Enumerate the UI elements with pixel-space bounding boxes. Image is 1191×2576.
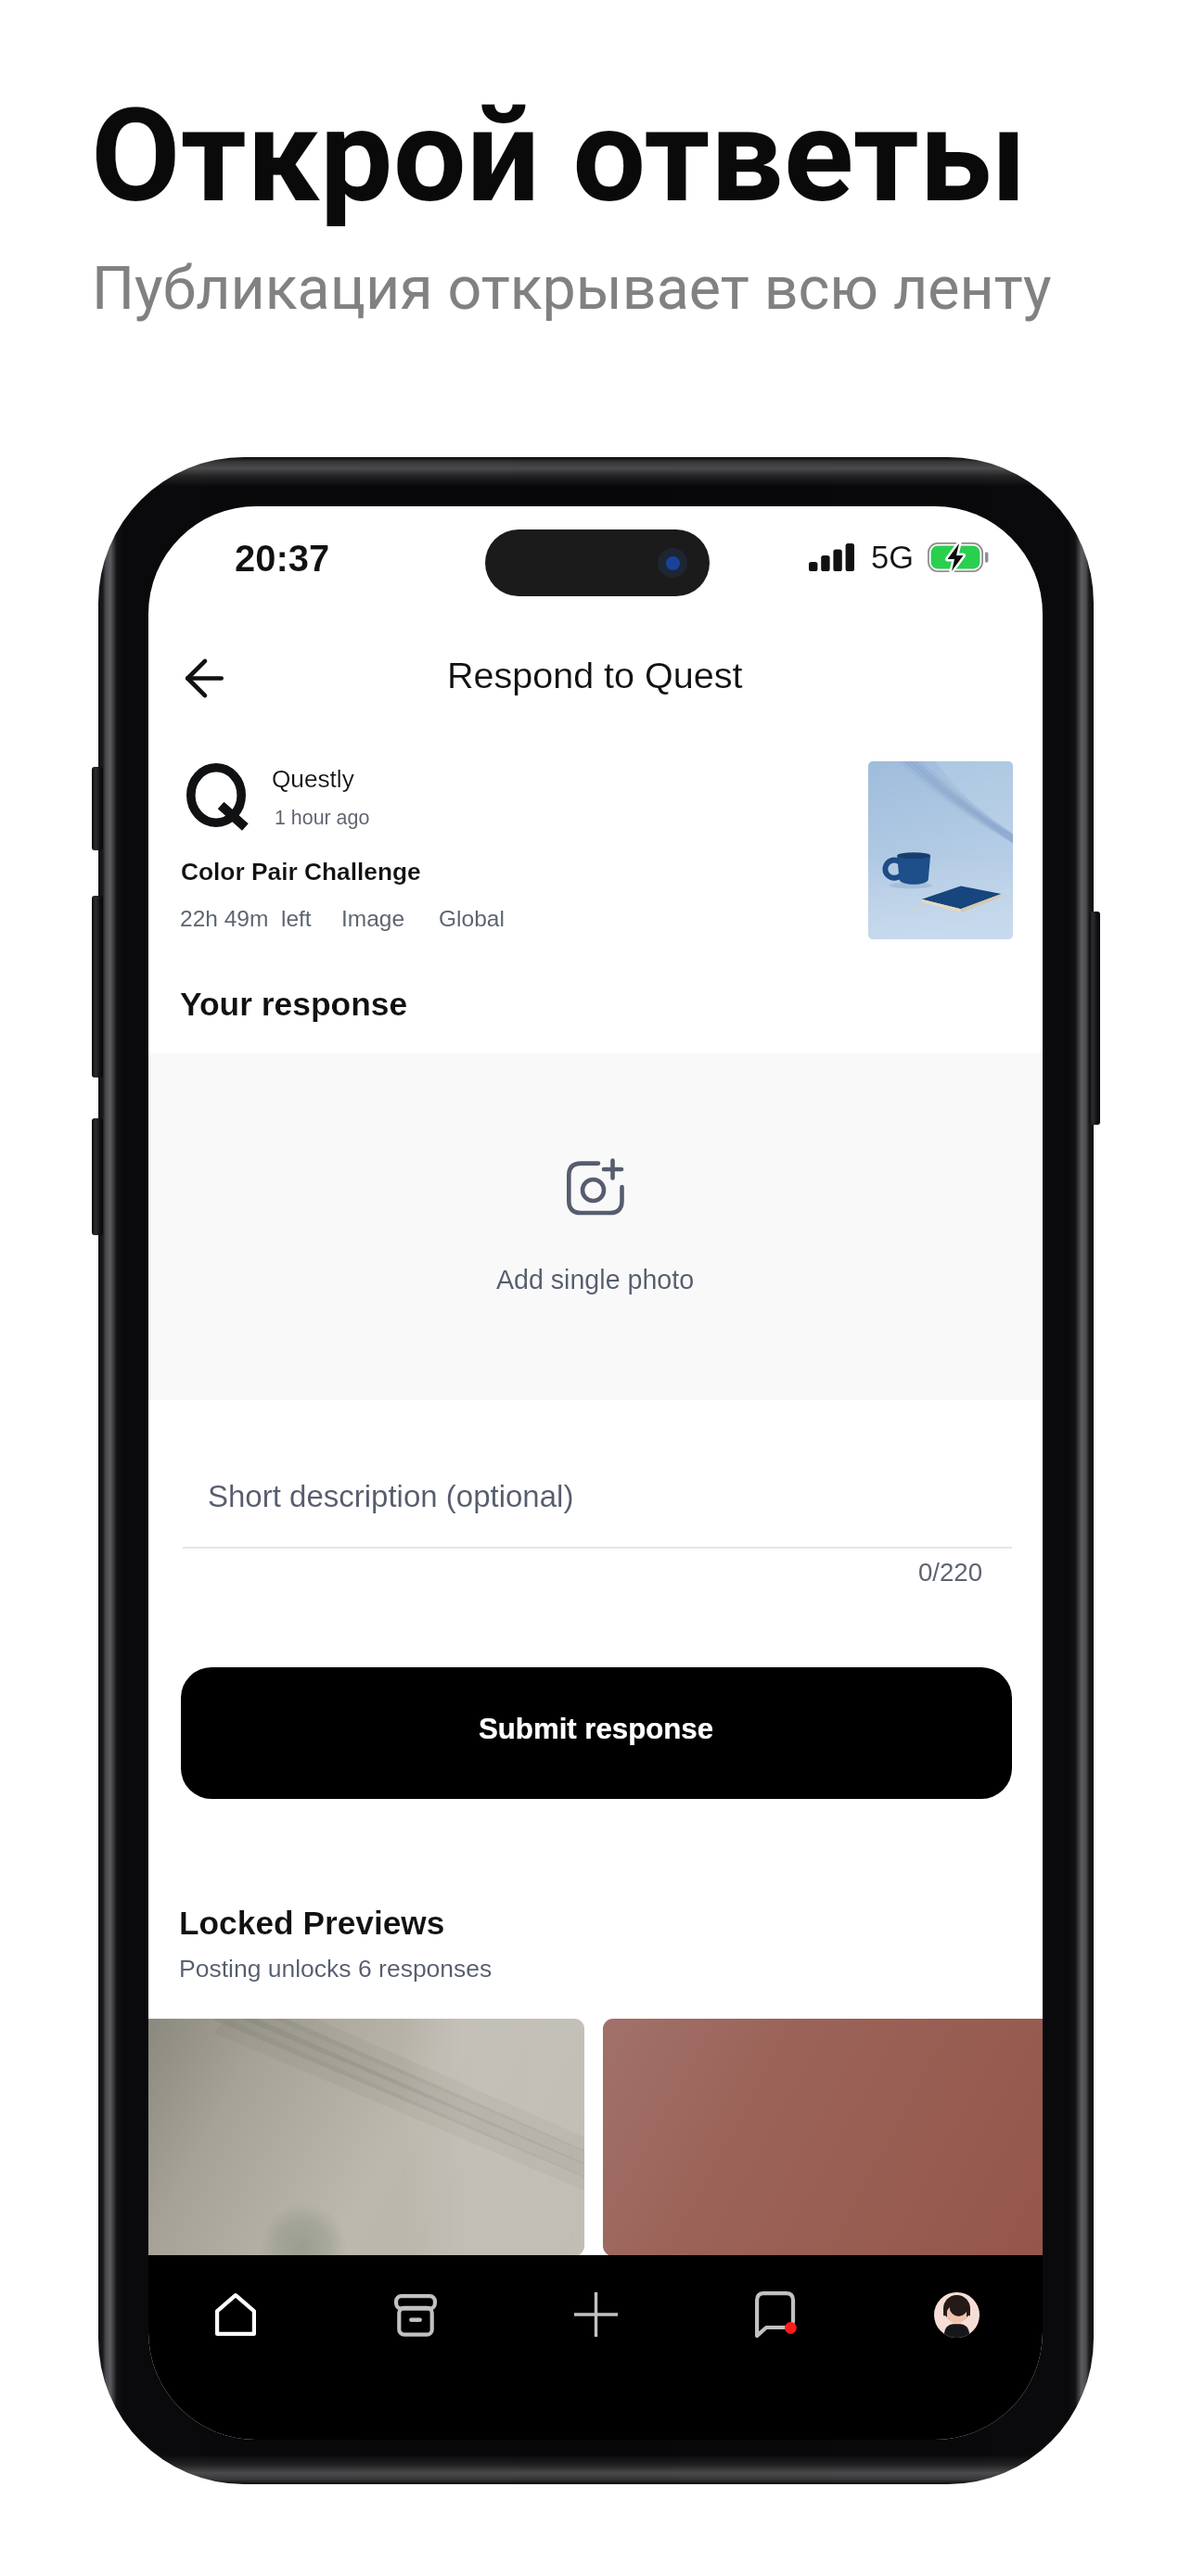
staticText: 20:37	[235, 538, 330, 580]
staticText: Add single photo	[496, 1265, 695, 1294]
button[interactable]: Add single photo	[148, 1053, 1043, 1400]
staticText: Locked Previews	[179, 1905, 445, 1941]
button[interactable]: Archive	[332, 2257, 499, 2372]
staticText: 5G	[871, 540, 915, 576]
staticText: 22h 49m left	[180, 906, 312, 931]
staticText: 0/220	[918, 1558, 983, 1587]
staticText: Публикация открывает всю ленту	[92, 253, 1052, 324]
button[interactable]: Back	[163, 637, 245, 719]
button[interactable]: Locked preview 1	[148, 2019, 584, 2256]
staticText: Posting unlocks 6 responses	[179, 1955, 493, 1983]
button[interactable]	[181, 1667, 1012, 1799]
staticText: Submit response	[479, 1713, 714, 1745]
staticText: Questly	[272, 765, 354, 792]
staticText: Color Pair Challenge	[181, 858, 421, 885]
staticText: Respond to Quest	[447, 655, 743, 695]
staticText: Image	[341, 906, 405, 931]
staticText: Открой ответы	[91, 80, 1027, 232]
staticText: Your response	[180, 986, 408, 1023]
staticText: 1 hour ago	[275, 807, 370, 829]
button[interactable]: Messages	[694, 2257, 861, 2372]
button[interactable]: Create	[512, 2257, 679, 2372]
button[interactable]: Locked preview 2	[603, 2019, 1043, 2256]
button[interactable]: Home	[152, 2257, 319, 2372]
button[interactable]: Profile	[873, 2257, 1040, 2372]
staticText: Short description (optional)	[208, 1479, 574, 1513]
staticText: Global	[439, 906, 505, 931]
